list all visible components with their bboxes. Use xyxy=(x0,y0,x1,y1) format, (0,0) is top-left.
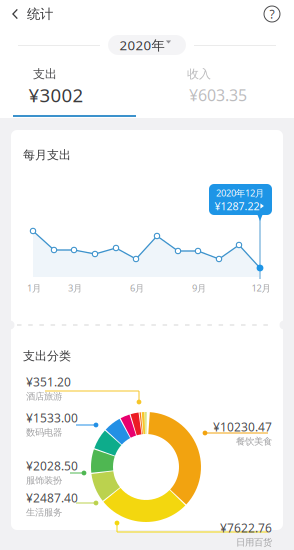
staticText: 服饰装扮 xyxy=(26,475,62,486)
staticText: 生活服务 xyxy=(26,507,62,518)
staticText: ¥3002 xyxy=(28,83,83,107)
staticText: ¥351.20 xyxy=(26,374,71,390)
staticText: ¥1287.22 xyxy=(214,199,259,213)
staticText: 每月支出 xyxy=(23,148,71,162)
staticText: 3月 xyxy=(68,282,82,294)
staticText: 收入 xyxy=(187,67,211,81)
staticText: 12月 xyxy=(251,282,270,294)
staticText: 酒店旅游 xyxy=(26,391,62,402)
staticText: ¥10230.47 xyxy=(213,419,272,435)
staticText: ? xyxy=(269,6,274,22)
staticText: ¥1533.00 xyxy=(26,410,78,426)
button[interactable]: 收入 xyxy=(147,63,294,117)
button[interactable]: 2020年 xyxy=(100,32,194,58)
staticText: ¥7622.76 xyxy=(220,520,272,536)
staticText: 日用百货 xyxy=(236,537,272,548)
staticText: 支出分类 xyxy=(23,349,71,363)
button[interactable]: 统计 xyxy=(0,0,62,28)
staticText: 6月 xyxy=(130,282,144,294)
button[interactable]: 支出 xyxy=(0,63,147,117)
staticText: ¥603.35 xyxy=(189,84,247,106)
staticText: 餐饮美食 xyxy=(236,436,272,447)
staticText: 数码电器 xyxy=(26,427,62,438)
staticText: 9月 xyxy=(192,282,206,294)
staticText: 2020年12月 xyxy=(216,187,264,199)
staticText: 1月 xyxy=(27,282,41,294)
staticText: 统计 xyxy=(27,6,53,22)
button[interactable]: Help xyxy=(258,0,286,28)
staticText: ¥2487.40 xyxy=(26,490,78,506)
staticText: 支出 xyxy=(33,67,57,81)
staticText: 2020年 xyxy=(119,36,164,54)
staticText: ¥2028.50 xyxy=(26,458,78,474)
